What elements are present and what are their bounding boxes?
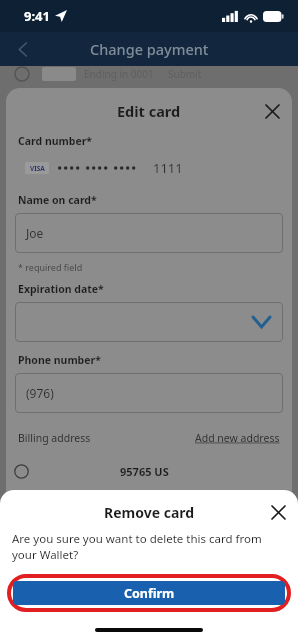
staticText: Change payment <box>90 39 209 59</box>
staticText: Are you sure you want to delete this car… <box>12 531 286 562</box>
button[interactable]: Close <box>260 99 284 123</box>
button[interactable]: Joe <box>15 213 283 253</box>
button[interactable]: Confirm <box>13 581 285 605</box>
staticText: Name on card* <box>18 193 97 207</box>
staticText: Expiration date* <box>18 282 104 296</box>
staticText: VISA <box>30 164 45 173</box>
button[interactable]: (976) <box>15 373 283 413</box>
staticText: 95765 US <box>120 464 169 479</box>
staticText: Card number* <box>18 134 93 148</box>
staticText: * required field <box>18 261 83 273</box>
button[interactable]: Close dialog <box>266 501 290 523</box>
staticText: 9:41 <box>24 7 50 25</box>
button[interactable]: Add new address <box>195 431 280 445</box>
staticText: Edit card <box>117 101 181 121</box>
button[interactable]: 95765 US <box>6 459 292 483</box>
staticText: Phone number* <box>18 353 101 367</box>
staticText: Ending in 0001 <box>84 67 154 81</box>
staticText: Confirm <box>124 585 175 602</box>
staticText: 1111 <box>153 159 183 177</box>
staticText: (976) <box>26 385 54 401</box>
staticText: Add new address <box>195 431 280 445</box>
staticText: Billing address <box>18 431 91 445</box>
staticText: Submit <box>168 67 202 81</box>
staticText: Joe <box>26 225 44 241</box>
staticText: Remove card <box>104 503 195 522</box>
button[interactable]: Expiration date dropdown <box>15 302 283 342</box>
button[interactable]: Back <box>8 34 38 64</box>
